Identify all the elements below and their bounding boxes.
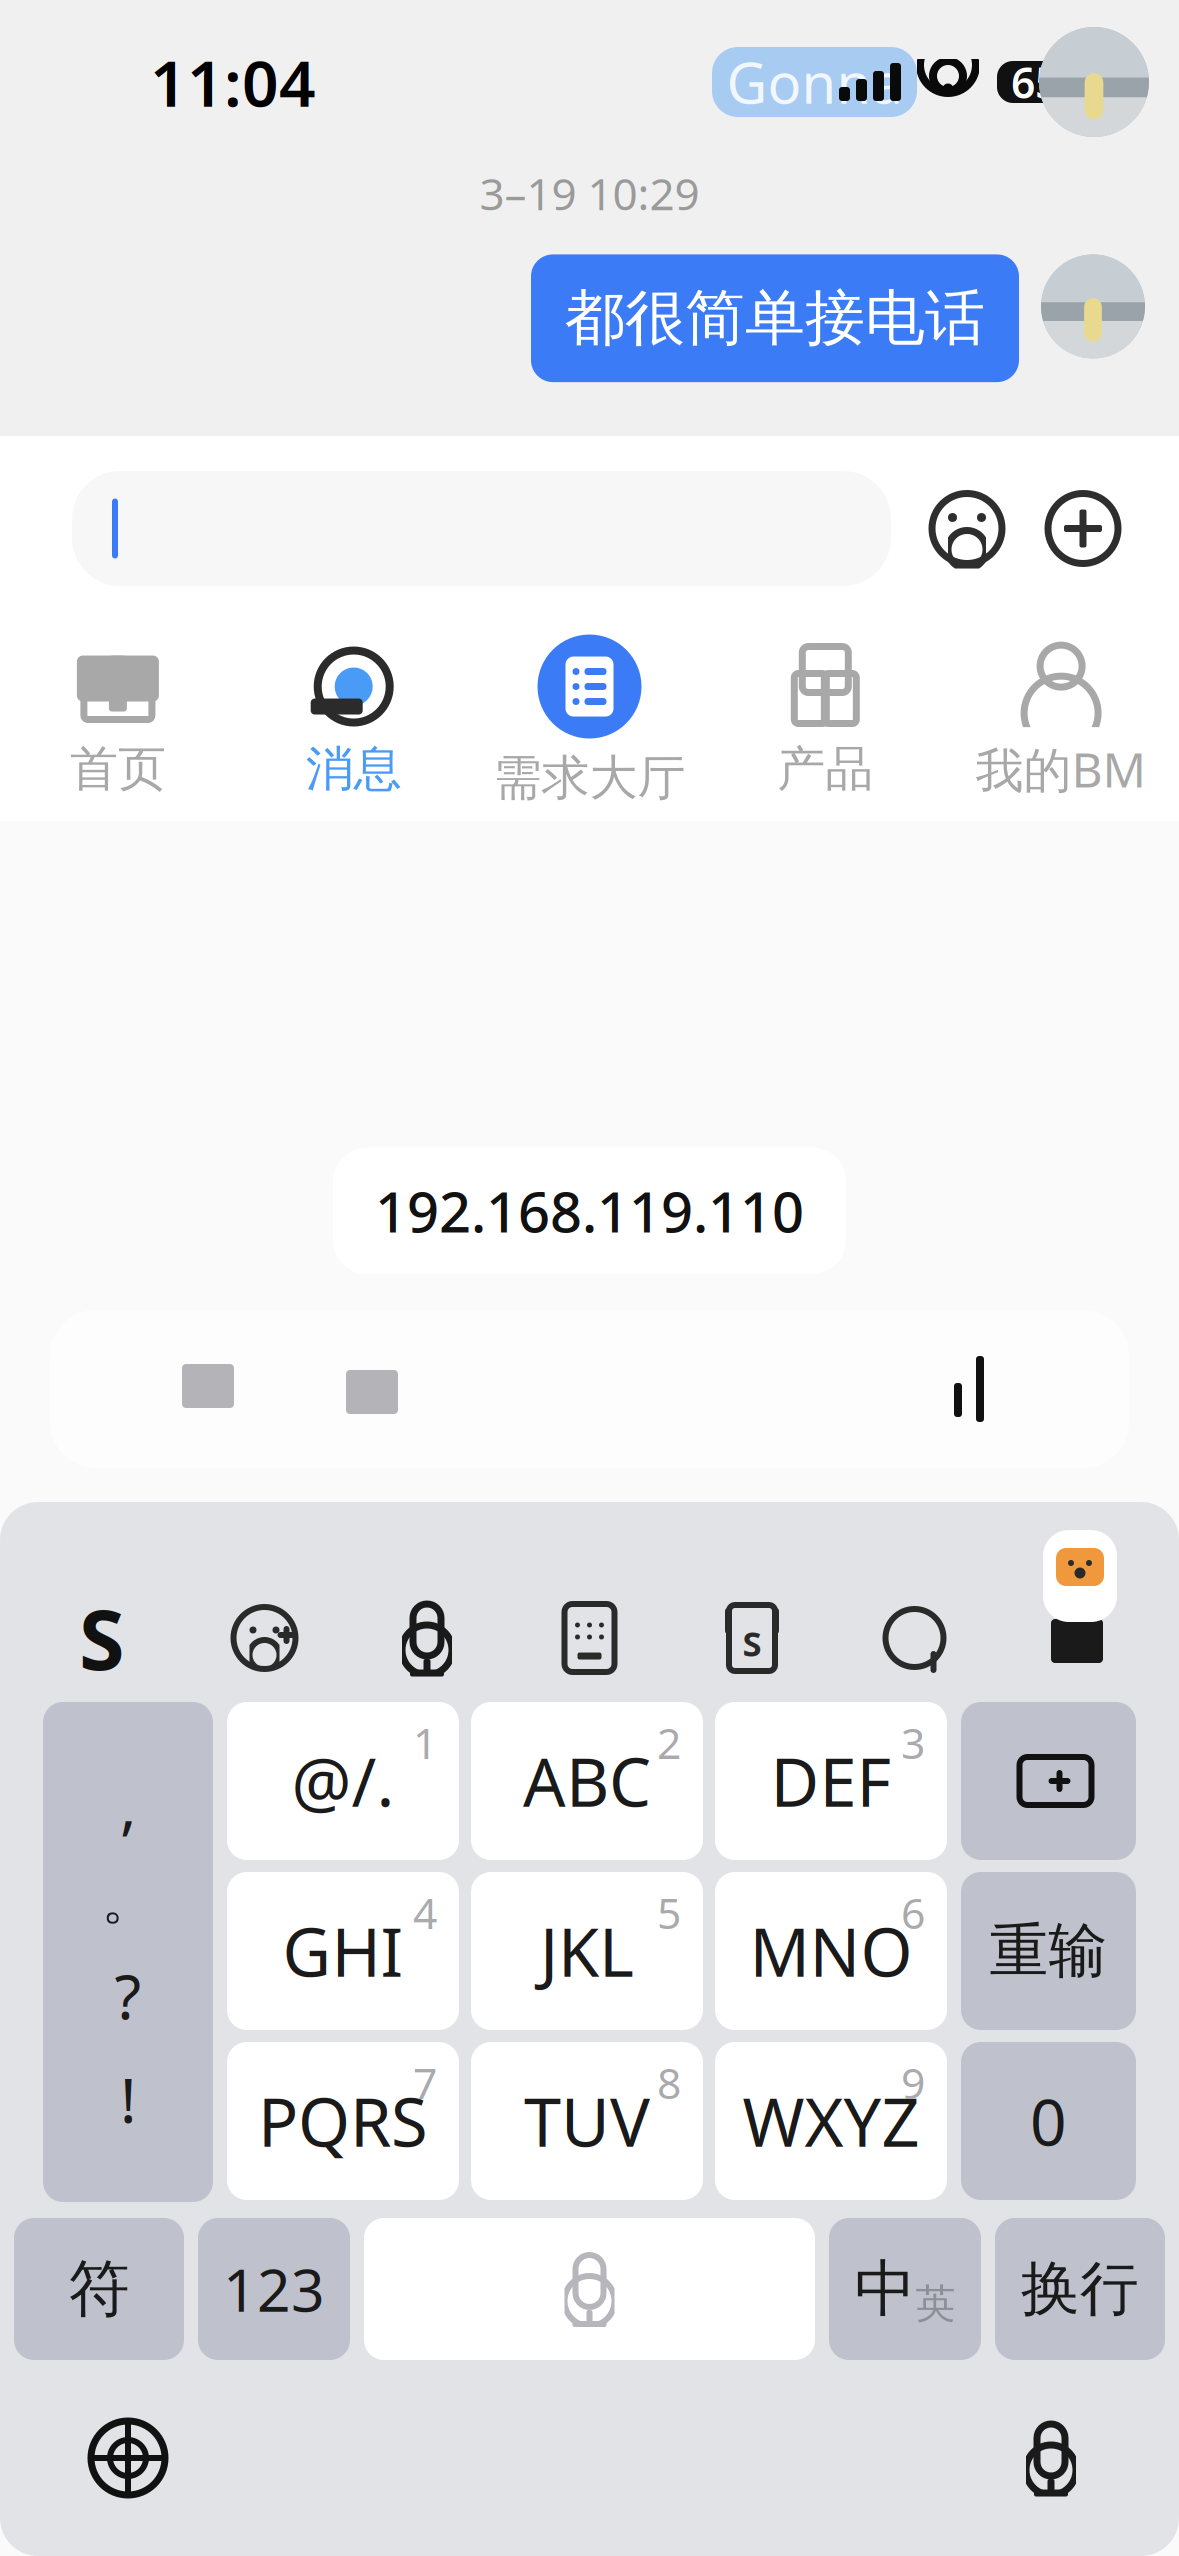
- staticText: 123: [223, 2250, 325, 2328]
- staticText: 192.168.119.110: [375, 1174, 804, 1248]
- staticText: 首页: [70, 739, 166, 798]
- button[interactable]: More: [1033, 478, 1133, 578]
- button[interactable]: 重输: [961, 1872, 1136, 2030]
- staticText: 3: [901, 1714, 925, 1771]
- button[interactable]: 0: [961, 2042, 1136, 2200]
- staticText: WXYZ: [742, 2077, 919, 2165]
- staticText: TUV: [524, 2077, 650, 2165]
- button[interactable]: Themes: [706, 1592, 798, 1684]
- staticText: 5: [657, 1884, 681, 1941]
- staticText: 。: [101, 1867, 154, 1933]
- staticText: @/.: [291, 1737, 394, 1825]
- staticText: 消息: [306, 739, 402, 798]
- button[interactable]: 需求大厅: [472, 621, 707, 821]
- staticText: 1: [413, 1714, 437, 1771]
- button[interactable]: Space / voice: [364, 2218, 815, 2360]
- staticText: 符: [68, 2251, 129, 2327]
- staticText: 换行: [1021, 2253, 1139, 2325]
- button[interactable]: JKL: [471, 1872, 703, 2030]
- button[interactable]: Delete: [961, 1702, 1136, 1860]
- button[interactable]: Collapse toolbar: [1031, 1592, 1123, 1684]
- button[interactable]: Previous field: [162, 1343, 254, 1435]
- staticText: !: [120, 2058, 136, 2140]
- button[interactable]: TUV: [471, 2042, 703, 2200]
- staticText: 6: [901, 1884, 925, 1941]
- staticText: ,: [120, 1764, 136, 1845]
- button[interactable]: Emoji: [917, 478, 1017, 578]
- button[interactable]: GHI: [227, 1872, 459, 2030]
- button[interactable]: Voice input: [381, 1592, 473, 1684]
- button[interactable]: Switch keyboard: [80, 2410, 176, 2506]
- staticText: 产品: [777, 739, 873, 798]
- staticText: 3–19 10:29: [479, 164, 699, 222]
- staticText: 重输: [989, 1915, 1107, 1987]
- staticText: DEF: [770, 1737, 891, 1825]
- staticText: 都很简单接电话: [565, 281, 985, 355]
- button[interactable]: 符: [14, 2218, 184, 2360]
- button[interactable]: Keyboard layout: [543, 1592, 635, 1684]
- staticText: S: [742, 1620, 761, 1666]
- button[interactable]: 192.168.119.110: [333, 1148, 846, 1274]
- staticText: 11:04: [150, 39, 316, 124]
- button[interactable]: Next field: [326, 1343, 418, 1435]
- button[interactable]: Sogou: [56, 1592, 148, 1684]
- staticText: ABC: [523, 1737, 651, 1825]
- button[interactable]: 换行: [995, 2218, 1165, 2360]
- button[interactable]: Search: [868, 1592, 960, 1684]
- button[interactable]: 首页: [0, 621, 236, 821]
- button[interactable]: PQRS: [227, 2042, 459, 2200]
- staticText: JKL: [540, 1907, 634, 1995]
- staticText: 2: [657, 1714, 681, 1771]
- button[interactable]: WXYZ: [715, 2042, 947, 2200]
- button[interactable]: @/.: [227, 1702, 459, 1860]
- staticText: 65: [1011, 54, 1059, 110]
- button[interactable]: ABC: [471, 1702, 703, 1860]
- staticText: 9: [901, 2054, 925, 2111]
- staticText: S: [79, 1583, 125, 1693]
- button[interactable]: ,: [43, 1702, 213, 2202]
- staticText: 中: [854, 2251, 915, 2327]
- staticText: Gonna: [726, 45, 902, 119]
- staticText: 英: [915, 2279, 955, 2328]
- staticText: MNO: [749, 1907, 912, 1995]
- button[interactable]: 123: [198, 2218, 350, 2360]
- button[interactable]: Done: [925, 1343, 1017, 1435]
- button[interactable]: Stickers: [218, 1592, 310, 1684]
- staticText: 8: [657, 2054, 681, 2111]
- staticText: 0: [1030, 2078, 1067, 2163]
- staticText: 需求大厅: [493, 748, 685, 807]
- button[interactable]: 消息: [236, 621, 472, 821]
- staticText: 我的BM: [976, 737, 1147, 801]
- button[interactable]: 我的BM: [943, 621, 1179, 821]
- button[interactable]: 产品: [707, 621, 943, 821]
- staticText: 7: [413, 2054, 437, 2111]
- staticText: 4: [413, 1884, 437, 1941]
- button[interactable]: MNO: [715, 1872, 947, 2030]
- staticText: PQRS: [258, 2077, 428, 2165]
- staticText: ?: [114, 1955, 141, 2036]
- button[interactable]: Dictation: [1003, 2410, 1099, 2506]
- staticText: GHI: [282, 1907, 403, 1995]
- button[interactable]: Chinese English toggle: [829, 2218, 981, 2360]
- button[interactable]: DEF: [715, 1702, 947, 1860]
